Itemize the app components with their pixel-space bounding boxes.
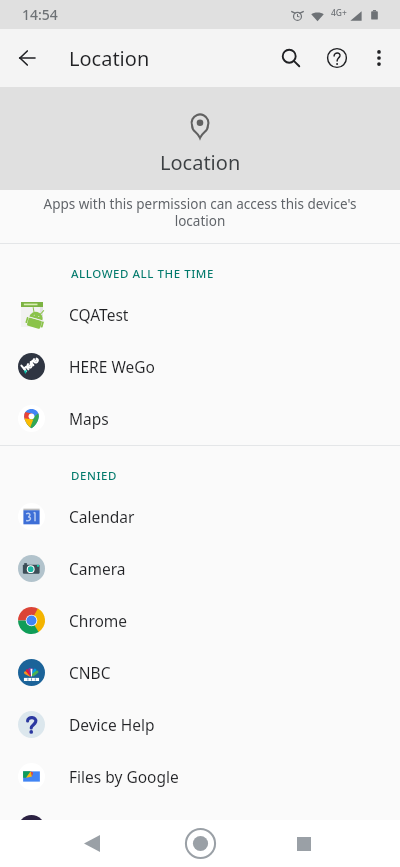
button[interactable]: Search [268,36,312,80]
button[interactable]: Maps [0,393,400,445]
staticText: ALLOWED ALL THE TIME [71,266,400,282]
button[interactable]: CQATest [0,289,400,341]
staticText: Calendar [69,506,135,527]
button[interactable]: CNBC [0,647,400,699]
button[interactable]: Navigate up [7,38,47,78]
button[interactable]: Chrome [0,595,400,647]
staticText: DENIED [71,468,400,484]
staticText: 4G+ [331,7,347,19]
staticText: Maps [69,408,109,429]
button[interactable]: HERE WeGo [0,341,400,393]
staticText: Device Help [69,714,155,735]
staticText: CQATest [69,304,129,325]
button[interactable]: Calendar [0,491,400,543]
staticText: Location [69,45,150,72]
staticText: HERE WeGo [69,356,155,377]
staticText: Files by Google [69,766,179,787]
staticText: Camera [69,558,126,579]
staticText: Chrome [69,610,128,631]
staticText: CNBC [69,662,111,683]
button[interactable] [18,815,45,820]
button[interactable]: Device Help [0,699,400,751]
staticText: Location [160,149,241,176]
button[interactable]: Back [64,820,120,867]
button[interactable]: Camera [0,543,400,595]
button[interactable]: More options [358,37,400,79]
button[interactable]: Help [312,35,358,81]
staticText: 14:54 [22,5,58,24]
staticText: Apps with this permission can access thi… [34,195,366,230]
button[interactable]: Recent apps [276,820,332,867]
button[interactable]: Home [172,820,228,867]
button[interactable]: Files by Google [0,751,400,803]
